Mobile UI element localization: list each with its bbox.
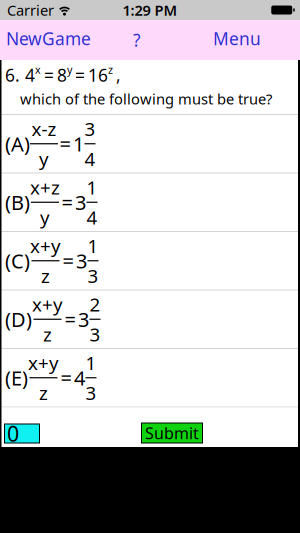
staticText: 1 (85, 350, 96, 375)
staticText: = (62, 247, 73, 274)
staticText: 3 (75, 189, 86, 216)
staticText: x-z (31, 116, 56, 141)
staticText: = (61, 189, 72, 216)
staticText: 0 (7, 419, 19, 448)
staticText: z (41, 263, 50, 288)
staticText: ? (133, 28, 141, 51)
staticText: x+y (32, 292, 63, 317)
button[interactable]: Submit (141, 422, 203, 443)
staticText: = (64, 306, 75, 333)
staticText: (A) (5, 130, 30, 157)
staticText: z (39, 380, 48, 405)
staticText: 4 (86, 205, 97, 230)
staticText: (C) (5, 247, 30, 274)
button[interactable]: (C) (0, 232, 300, 289)
staticText: x+y (30, 233, 61, 258)
staticText: = (59, 130, 70, 157)
staticText: which of the following must be true? (20, 89, 272, 108)
staticText: z (43, 322, 52, 347)
staticText: 1 (86, 175, 97, 200)
staticText: 3 (84, 116, 95, 141)
staticText: 3 (87, 263, 98, 288)
staticText: 1:29 PM (122, 0, 177, 20)
staticText: 1 (73, 130, 84, 157)
staticText: Submit (145, 422, 199, 444)
button[interactable]: (A) (0, 115, 300, 172)
staticText: = (60, 364, 71, 391)
button[interactable]: Answer (4, 423, 40, 443)
button[interactable]: Help (133, 28, 141, 51)
staticText: 3 (78, 306, 89, 333)
staticText: 1 (87, 233, 98, 258)
staticText: NewGame (6, 27, 91, 50)
staticText: y (39, 146, 49, 171)
staticText: (B) (5, 189, 30, 216)
staticText: (E) (5, 364, 28, 391)
staticText: y (40, 205, 50, 230)
staticText: 3 (89, 322, 100, 347)
staticText: 4 (84, 146, 95, 171)
button[interactable]: (B) (0, 173, 300, 231)
staticText: x+z (30, 175, 60, 200)
staticText: 6. 4x = 8y = 16z , (5, 62, 121, 86)
button[interactable]: (D) (0, 290, 300, 348)
staticText: 4 (74, 364, 85, 391)
staticText: 3 (85, 380, 96, 405)
staticText: 2 (89, 292, 100, 317)
staticText: Carrier (7, 0, 54, 20)
button[interactable]: Menu (213, 27, 261, 50)
staticText: x+y (28, 350, 59, 375)
staticText: Menu (213, 27, 261, 50)
button[interactable]: NewGame (6, 27, 91, 50)
staticText: 3 (76, 247, 87, 274)
staticText: (D) (5, 306, 32, 333)
button[interactable]: (E) (0, 349, 300, 406)
